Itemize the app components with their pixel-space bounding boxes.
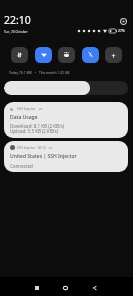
button[interactable]: Settings (120, 18, 127, 25)
button[interactable]: Home (57, 280, 73, 296)
staticText: Today 76.1 MB (9, 70, 32, 74)
staticText: This month 1.02 GB (39, 70, 70, 74)
staticText: Connected (10, 163, 33, 169)
button[interactable]: Quick setting (11, 47, 28, 63)
staticText: Download: 8.1 KB (2 KB/s) Upload: 5.5 KB… (10, 123, 65, 134)
button[interactable]: Quick setting (82, 47, 99, 63)
button[interactable]: Quick setting (35, 47, 52, 63)
staticText: Tue, 26 October (4, 30, 28, 34)
staticText: 22:10 (4, 13, 31, 27)
staticText: SSH Injector · 00:14 (17, 146, 46, 150)
button[interactable]: Quick setting (105, 47, 122, 63)
button[interactable]: SSH Injector · 00:14 (4, 141, 128, 172)
button[interactable]: Quick setting (58, 47, 75, 63)
staticText: Data Usage (10, 114, 38, 121)
button[interactable]: Back (86, 280, 102, 296)
button[interactable]: Recent apps (29, 280, 45, 296)
button[interactable]: SSH Injector (4, 102, 128, 138)
staticText: SSH Injector (17, 107, 36, 111)
staticText: United States | SSH Injector (10, 153, 77, 160)
button[interactable]: Brightness (4, 81, 128, 95)
staticText: 27% (118, 28, 125, 33)
